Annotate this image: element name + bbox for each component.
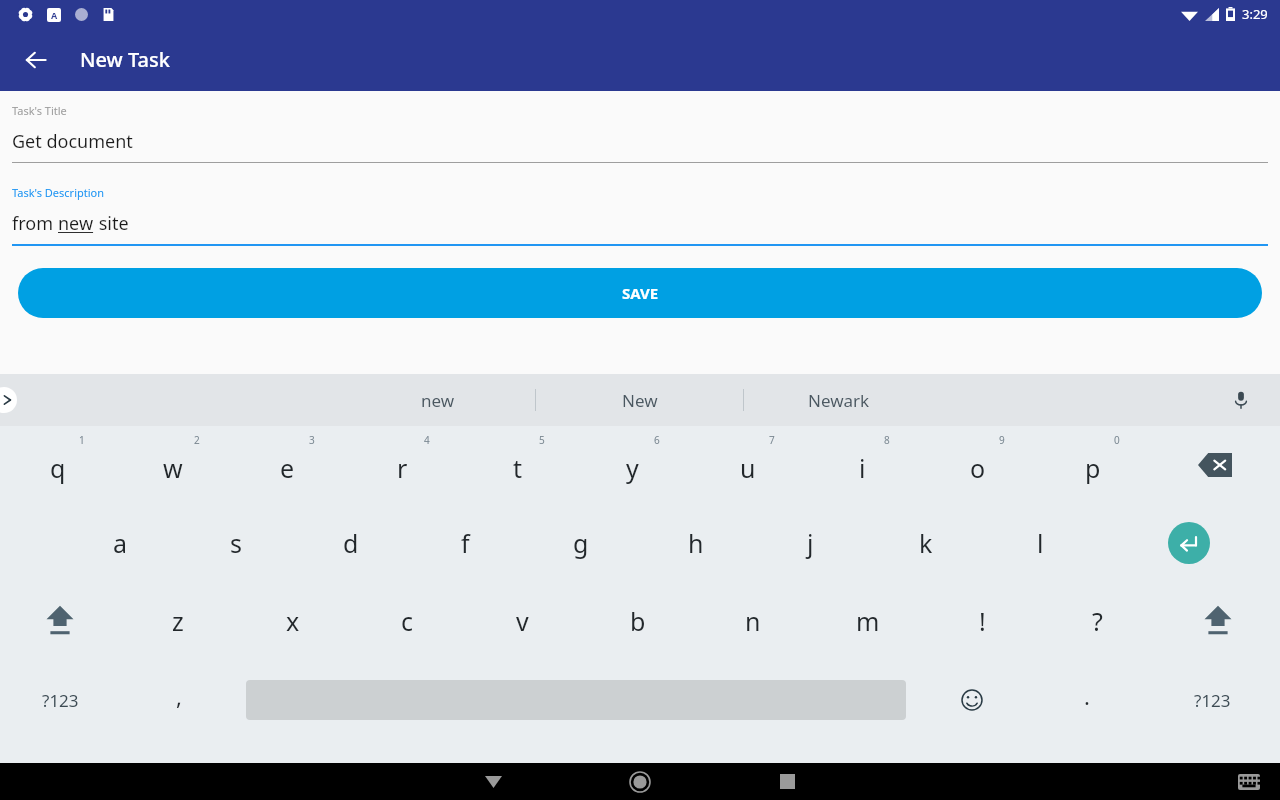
staticText: o xyxy=(970,451,986,485)
staticText: Get document xyxy=(12,129,133,154)
button[interactable]: d xyxy=(293,504,408,582)
staticText: New xyxy=(622,389,658,412)
staticText: k xyxy=(919,526,933,560)
staticText: SAVE xyxy=(622,283,659,303)
button[interactable]: m xyxy=(810,582,925,660)
staticText: Newark xyxy=(808,389,870,412)
staticText: d xyxy=(343,526,359,560)
button[interactable]: Enter xyxy=(1098,504,1280,582)
staticText: ! xyxy=(979,604,986,638)
staticText: r xyxy=(397,451,408,485)
button[interactable]: Newark xyxy=(744,374,934,426)
button[interactable]: Voice input xyxy=(1224,383,1258,417)
button[interactable]: x xyxy=(235,582,350,660)
staticText: m xyxy=(856,604,880,638)
staticText: s xyxy=(230,526,242,560)
staticText: 8 xyxy=(884,433,890,447)
staticText: new xyxy=(58,211,94,236)
button[interactable]: ?123 xyxy=(0,660,120,740)
staticText: ? xyxy=(1092,604,1103,638)
button[interactable]: w xyxy=(115,426,230,504)
staticText: New Task xyxy=(80,46,170,73)
button[interactable]: y xyxy=(575,426,690,504)
staticText: new xyxy=(421,389,455,412)
staticText: l xyxy=(1037,526,1044,560)
button[interactable]: s xyxy=(178,504,293,582)
button[interactable]: ?123 xyxy=(1144,660,1280,740)
button[interactable]: Shift xyxy=(0,582,120,660)
staticText: ?123 xyxy=(42,689,79,712)
staticText: 3 xyxy=(309,433,315,447)
staticText: t xyxy=(513,451,523,485)
button[interactable]: o xyxy=(920,426,1035,504)
staticText: 0 xyxy=(1114,433,1120,447)
staticText: e xyxy=(280,451,295,485)
staticText: u xyxy=(740,451,756,485)
staticText: . xyxy=(1084,681,1090,711)
button[interactable]: . xyxy=(1029,660,1144,740)
staticText: site xyxy=(94,211,129,236)
button[interactable]: Space xyxy=(238,660,914,740)
staticText: x xyxy=(286,604,300,638)
button[interactable]: i xyxy=(805,426,920,504)
button[interactable]: New xyxy=(536,374,743,426)
button[interactable]: p xyxy=(1035,426,1150,504)
button[interactable]: l xyxy=(983,504,1098,582)
staticText: w xyxy=(163,451,183,485)
staticText: j xyxy=(807,526,814,560)
button[interactable]: , xyxy=(120,660,238,740)
button[interactable]: q xyxy=(0,426,115,504)
button[interactable]: Back xyxy=(470,763,516,800)
staticText: 3:29 xyxy=(1242,5,1268,23)
button[interactable]: z xyxy=(120,582,235,660)
button[interactable]: Backspace xyxy=(1150,426,1280,504)
staticText: i xyxy=(859,451,866,485)
staticText: 5 xyxy=(539,433,545,447)
button[interactable]: Shift xyxy=(1155,582,1280,660)
staticText: 7 xyxy=(769,433,775,447)
button[interactable]: g xyxy=(523,504,638,582)
button[interactable]: b xyxy=(580,582,695,660)
staticText: h xyxy=(688,526,704,560)
button[interactable]: h xyxy=(638,504,753,582)
staticText: , xyxy=(176,681,182,711)
button[interactable]: a xyxy=(63,504,178,582)
staticText: v xyxy=(516,604,529,638)
button[interactable]: Emoji xyxy=(914,660,1029,740)
button[interactable]: c xyxy=(350,582,465,660)
staticText: 2 xyxy=(194,433,200,447)
button[interactable]: u xyxy=(690,426,805,504)
button[interactable]: Recent apps xyxy=(764,763,810,800)
button[interactable]: t xyxy=(460,426,575,504)
button[interactable]: v xyxy=(465,582,580,660)
button[interactable]: SAVE xyxy=(18,268,1262,318)
button[interactable]: ? xyxy=(1040,582,1155,660)
button[interactable]: Switch keyboard xyxy=(1232,765,1266,799)
button[interactable]: f xyxy=(408,504,523,582)
staticText: from xyxy=(12,211,58,236)
button[interactable]: new xyxy=(340,374,535,426)
staticText: ?123 xyxy=(1194,689,1231,712)
button[interactable]: n xyxy=(695,582,810,660)
staticText: n xyxy=(745,604,761,638)
staticText: A xyxy=(51,9,58,21)
button[interactable]: j xyxy=(753,504,868,582)
staticText: 9 xyxy=(999,433,1005,447)
button[interactable]: e xyxy=(230,426,345,504)
staticText: y xyxy=(626,451,639,485)
button[interactable]: r xyxy=(345,426,460,504)
button[interactable]: Home xyxy=(617,763,663,800)
button[interactable]: Back xyxy=(12,36,60,84)
staticText: b xyxy=(630,604,646,638)
staticText: Task's Description xyxy=(12,185,105,200)
staticText: 4 xyxy=(424,433,430,447)
staticText: f xyxy=(461,526,470,560)
button[interactable]: k xyxy=(868,504,983,582)
staticText: q xyxy=(50,451,66,485)
staticText: z xyxy=(172,604,184,638)
button[interactable]: Expand toolbar xyxy=(0,387,17,413)
button[interactable]: ! xyxy=(925,582,1040,660)
staticText: 1 xyxy=(79,433,85,447)
staticText: g xyxy=(573,526,589,560)
staticText: p xyxy=(1085,451,1101,485)
